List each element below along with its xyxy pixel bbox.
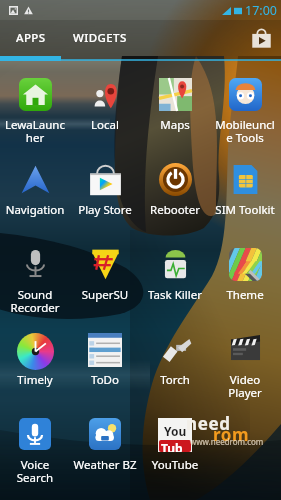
staticText: 17:00 xyxy=(245,2,277,19)
button[interactable]: LewaLaunc her xyxy=(0,60,70,145)
button[interactable]: SIM Toolkit xyxy=(210,145,280,230)
button[interactable]: Local xyxy=(70,60,140,145)
staticText: Weather BZ xyxy=(71,457,139,473)
button[interactable]: Video Player xyxy=(210,315,280,400)
staticText: Navigation xyxy=(1,202,69,218)
staticText: Torch xyxy=(141,372,209,388)
button[interactable]: APPS xyxy=(0,20,61,56)
button[interactable]: Maps xyxy=(140,60,210,145)
button[interactable]: Mobileuncl e Tools xyxy=(210,60,280,145)
button[interactable]: Rebooter xyxy=(140,145,210,230)
button[interactable]: Weather BZ xyxy=(70,400,140,485)
button[interactable]: You xyxy=(140,400,210,485)
staticText: Voice Search xyxy=(1,457,69,485)
staticText: SuperSU xyxy=(71,287,139,303)
staticText: WIDGETS xyxy=(73,30,127,46)
staticText: Local xyxy=(71,117,139,133)
staticText: Task Killer xyxy=(141,287,209,303)
button[interactable]: ToDo xyxy=(70,315,140,400)
button[interactable]: Theme xyxy=(210,230,280,315)
staticText: Tube xyxy=(161,440,189,452)
staticText: www.needrom.com xyxy=(190,436,264,447)
staticText: ToDo xyxy=(71,372,139,388)
staticText: Theme xyxy=(211,287,279,303)
staticText: Rebooter xyxy=(141,202,209,218)
staticText: rom xyxy=(213,423,250,446)
staticText: Mobileuncl e Tools xyxy=(211,117,279,145)
button[interactable]: Shop xyxy=(247,24,275,52)
staticText: Play Store xyxy=(71,202,139,218)
staticText: Video Player xyxy=(211,372,279,400)
button[interactable]: Sound Recorder xyxy=(0,230,70,315)
button[interactable]: Torch xyxy=(140,315,210,400)
staticText: Maps xyxy=(141,117,209,133)
button[interactable]: Timely xyxy=(0,315,70,400)
button[interactable]: Task Killer xyxy=(140,230,210,315)
staticText: You xyxy=(164,423,187,439)
staticText: APPS xyxy=(16,30,46,46)
staticText: LewaLaunc her xyxy=(1,117,69,145)
staticText: Sound Recorder xyxy=(1,287,69,315)
staticText: Timely xyxy=(1,372,69,388)
button[interactable]: WIDGETS xyxy=(61,20,139,56)
button[interactable]: SuperSU xyxy=(70,230,140,315)
button[interactable]: Voice Search xyxy=(0,400,70,485)
button[interactable]: Navigation xyxy=(0,145,70,230)
staticText: YouTube xyxy=(141,457,209,473)
staticText: need xyxy=(186,412,231,435)
staticText: SIM Toolkit xyxy=(211,202,279,218)
button[interactable]: Play Store xyxy=(70,145,140,230)
